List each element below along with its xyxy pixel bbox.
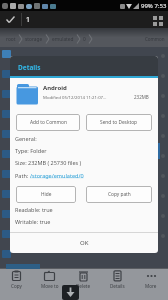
staticText: Copy path xyxy=(108,191,131,198)
button[interactable]: Delete xyxy=(66,270,100,300)
staticText: storage xyxy=(25,36,43,43)
staticText: Size: 232MB ( 25730 files ) xyxy=(15,159,82,166)
button[interactable]: emulated xyxy=(50,36,76,43)
staticText: Readable: true xyxy=(15,206,53,213)
button[interactable] xyxy=(152,14,164,26)
staticText: Send to Desktop xyxy=(100,119,138,126)
button[interactable]: Send to Desktop xyxy=(86,114,152,131)
button[interactable]: Copy path xyxy=(86,186,152,203)
button[interactable]: root xyxy=(4,36,18,43)
staticText: emulated xyxy=(52,36,74,43)
button[interactable] xyxy=(5,14,16,25)
staticText: Delete xyxy=(76,283,90,289)
button[interactable]: More xyxy=(134,270,168,300)
staticText: Details xyxy=(110,283,125,289)
staticText: Details xyxy=(18,63,41,72)
button[interactable] xyxy=(62,285,79,300)
button[interactable]: 0 xyxy=(81,36,88,43)
staticText: More xyxy=(145,283,157,289)
staticText: General: xyxy=(15,135,37,142)
button[interactable]: OK xyxy=(10,233,158,253)
staticText: Common xyxy=(145,36,165,42)
button[interactable]: Copy xyxy=(0,270,33,300)
staticText: Copy xyxy=(11,283,22,289)
staticText: root xyxy=(6,36,16,43)
button[interactable]: Move to xyxy=(33,270,66,300)
staticText: Android xyxy=(43,84,67,92)
button[interactable]: storage xyxy=(23,36,45,43)
staticText: Writable: true xyxy=(15,218,51,225)
button[interactable]: Hide xyxy=(16,186,76,203)
staticText: OK xyxy=(80,239,89,247)
staticText: 232MB xyxy=(134,94,149,100)
staticText: /storage/emulated/0 xyxy=(30,172,84,179)
button[interactable]: /storage/emulated/0 xyxy=(30,172,84,179)
button[interactable]: Common xyxy=(145,36,165,42)
staticText: Move to xyxy=(41,283,59,289)
staticText: Path: xyxy=(15,172,30,179)
staticText: 99% 7:53 xyxy=(141,2,167,10)
staticText: Modified 05/12/2014 11:21:07… xyxy=(43,94,107,100)
button[interactable]: Add to Common xyxy=(16,114,80,131)
staticText: Type: Folder xyxy=(15,147,47,154)
staticText: Add to Common xyxy=(30,119,67,126)
staticText: Hide xyxy=(41,191,52,198)
staticText: 0 xyxy=(83,36,86,43)
staticText: 1 xyxy=(26,15,31,25)
button[interactable]: Details xyxy=(100,270,134,300)
